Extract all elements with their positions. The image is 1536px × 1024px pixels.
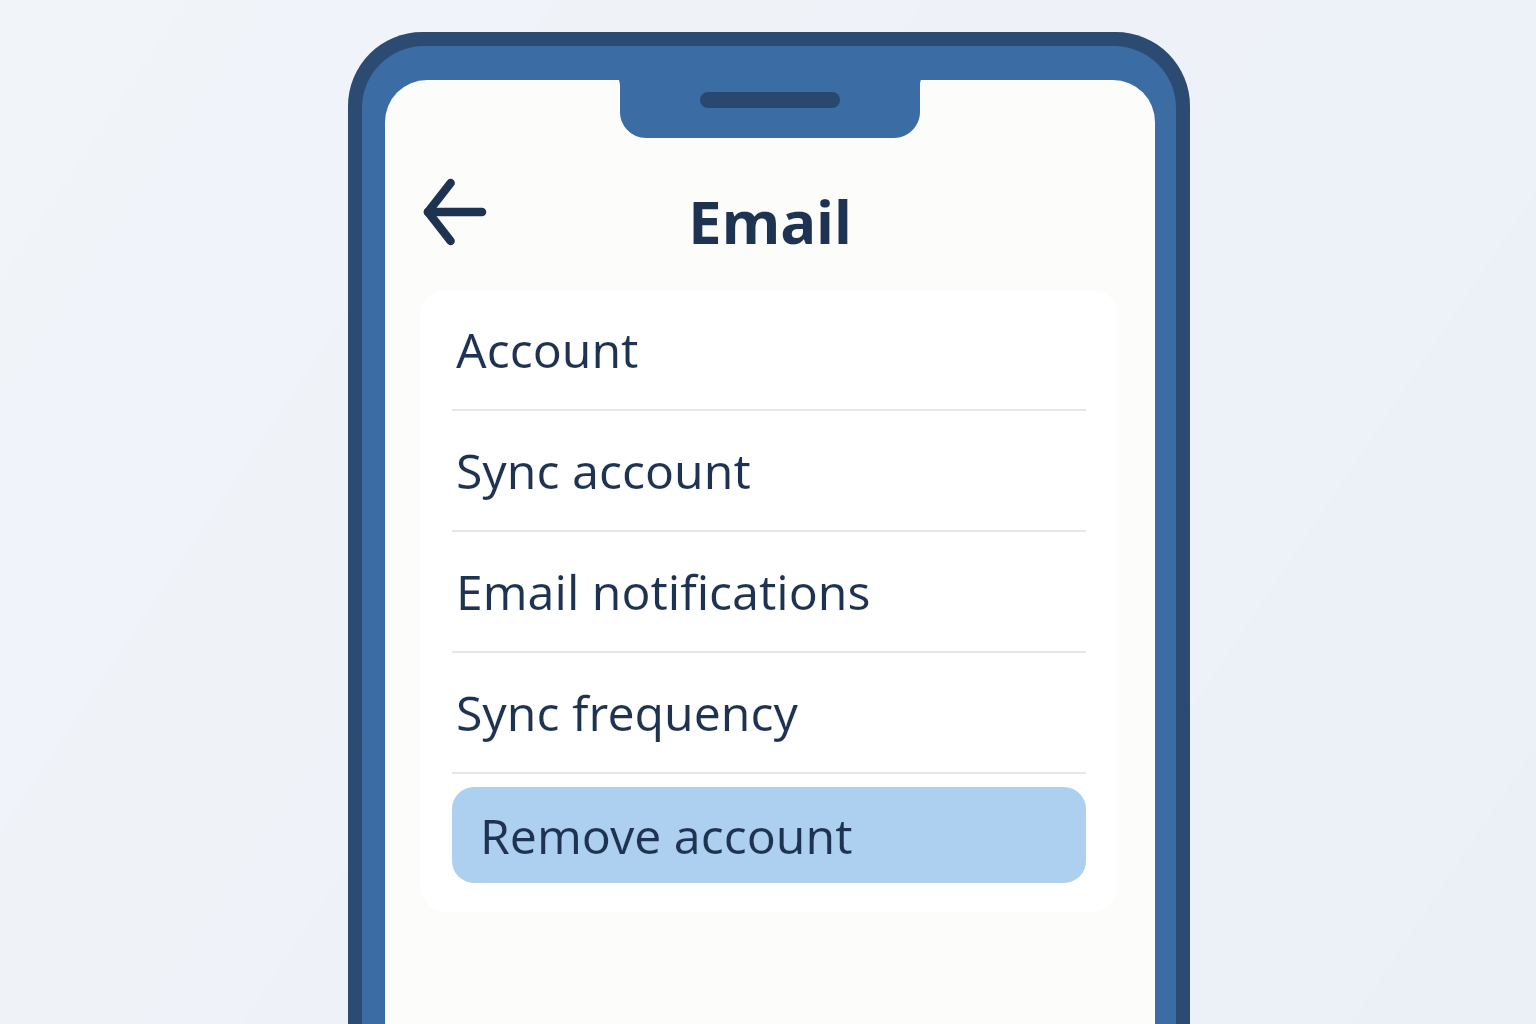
button[interactable]: Back [415, 172, 495, 252]
button[interactable]: Email notifications [420, 532, 1118, 651]
staticText: Account [456, 317, 639, 382]
button[interactable]: Sync account [420, 411, 1118, 530]
staticText: Remove account [480, 803, 853, 868]
staticText: Email [688, 180, 852, 262]
staticText: Sync account [456, 438, 751, 503]
button[interactable]: Remove account [452, 787, 1086, 883]
staticText: Sync frequency [456, 680, 798, 745]
button[interactable]: Sync frequency [420, 653, 1118, 772]
button[interactable]: Account [420, 290, 1118, 409]
staticText: Email notifications [456, 559, 871, 624]
